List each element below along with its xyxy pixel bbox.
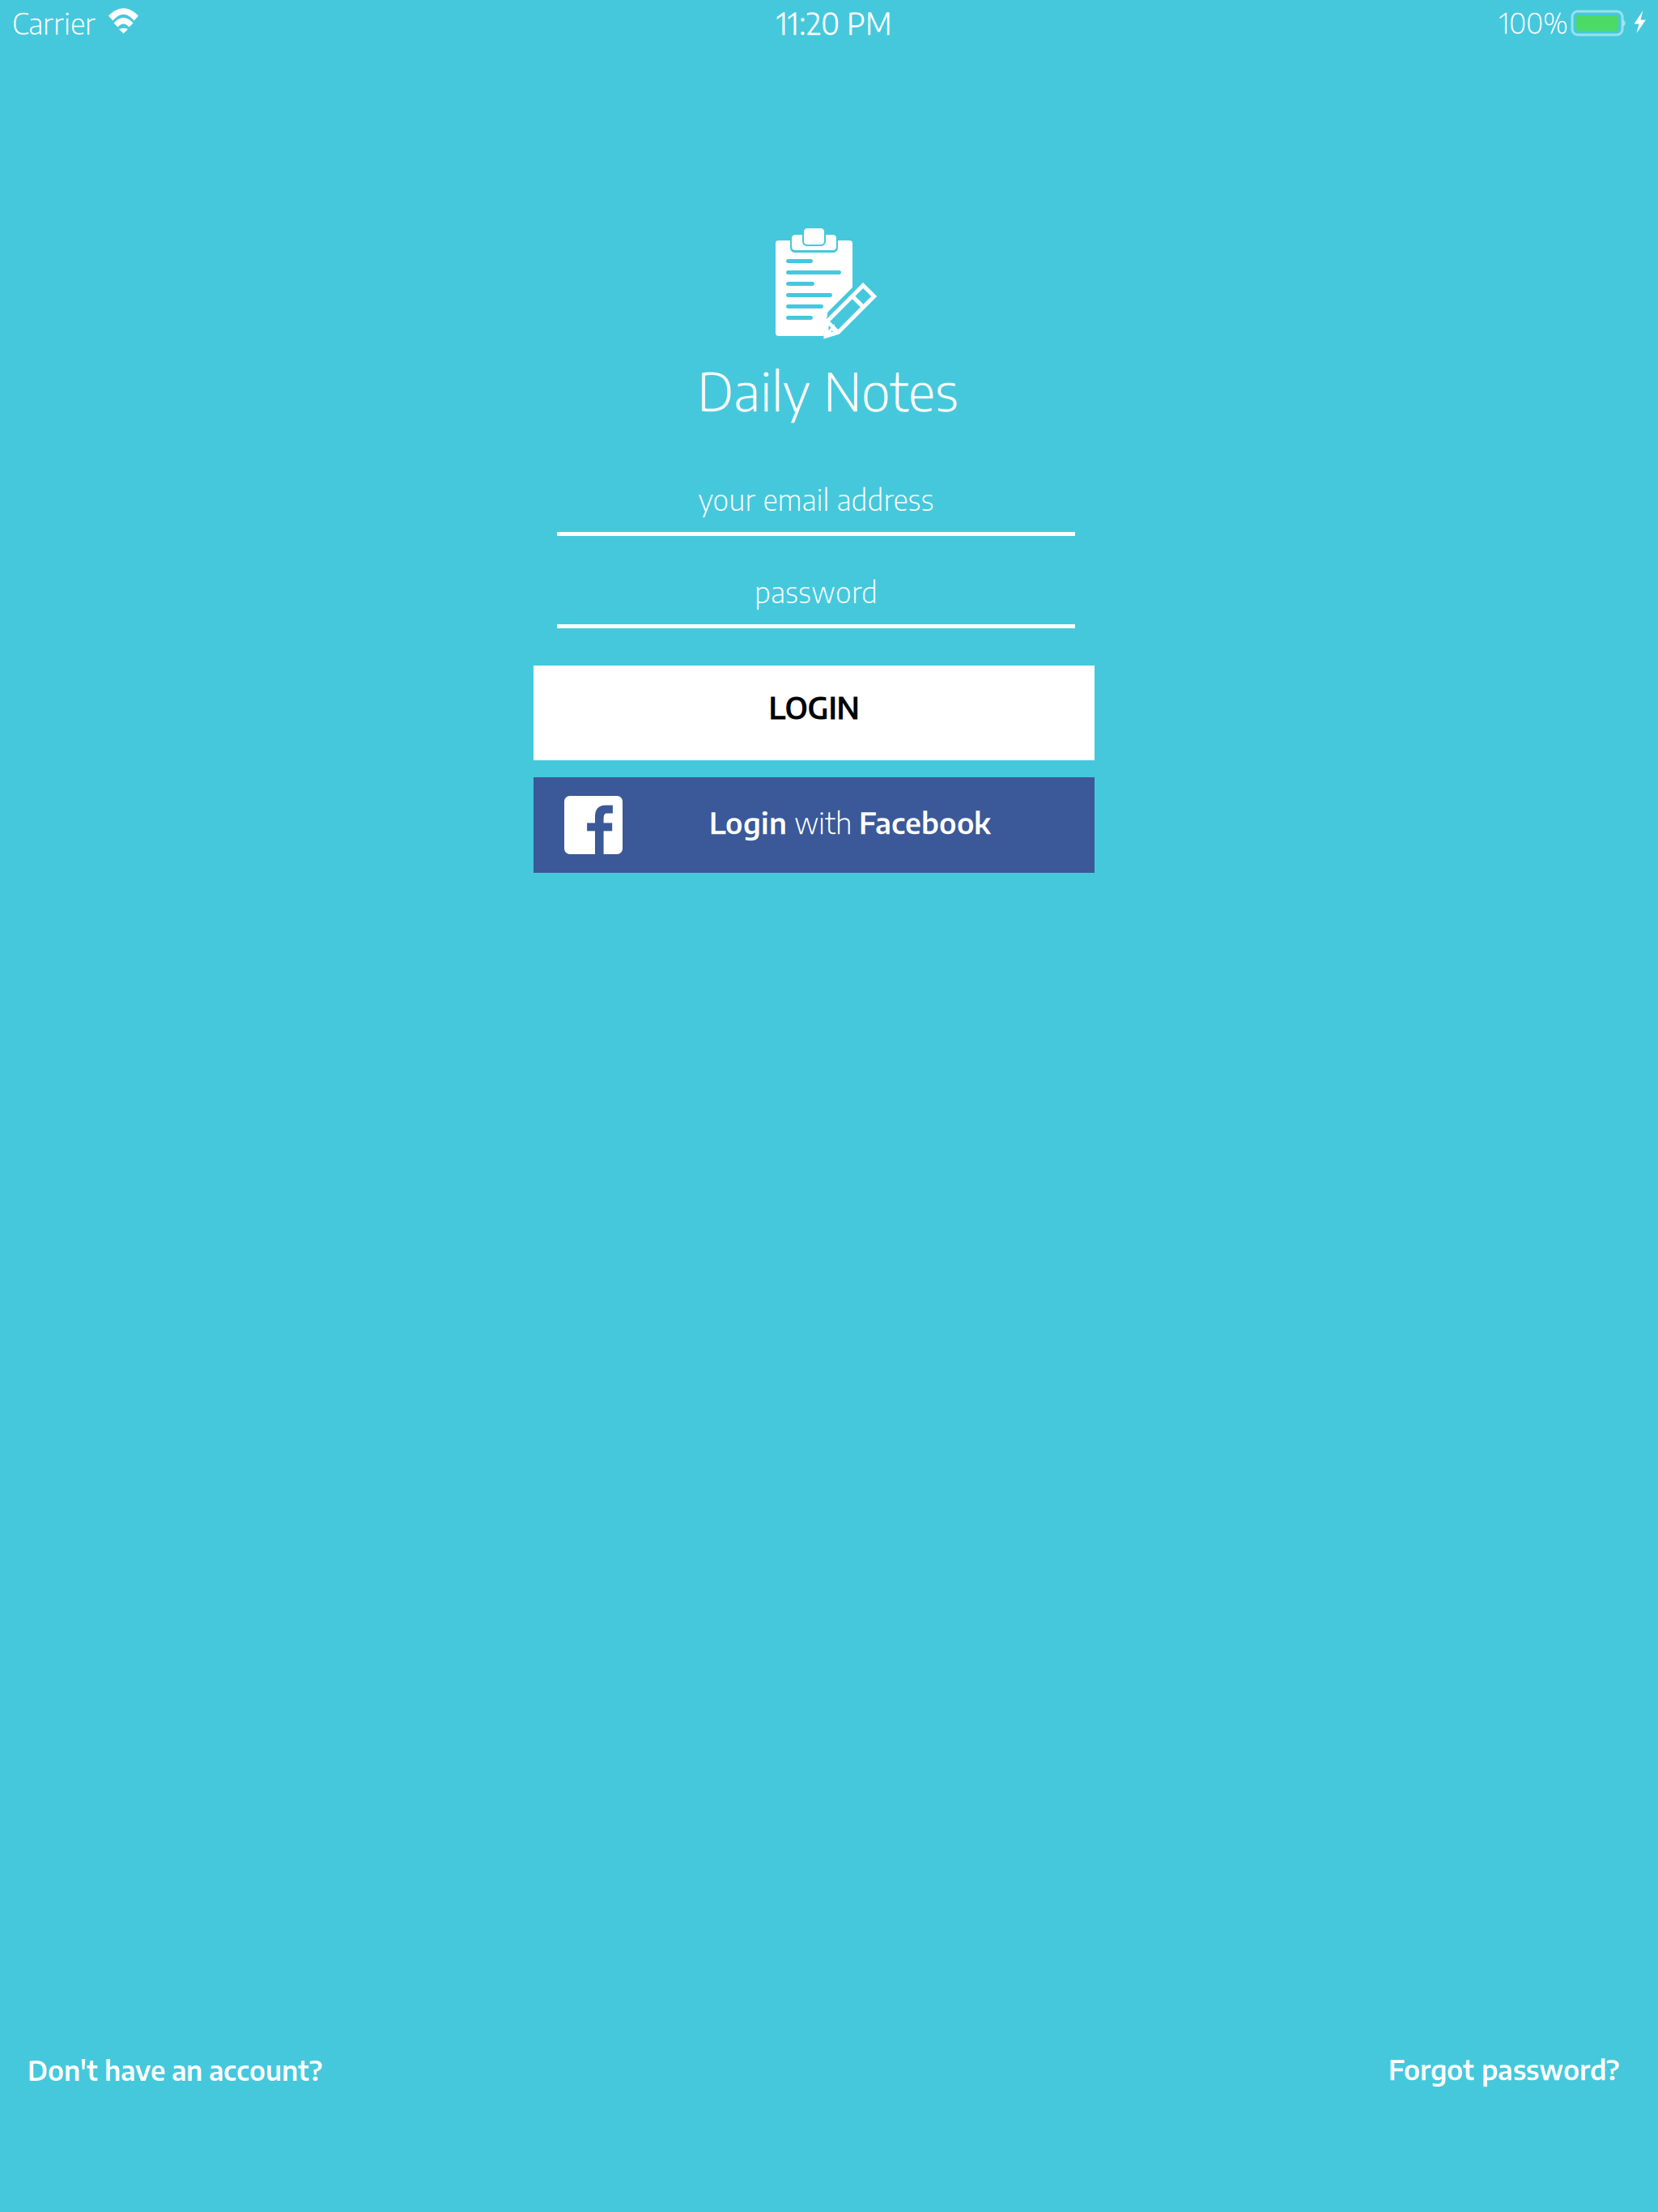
button[interactable]: Login with Facebook (534, 777, 1095, 873)
staticText: Carrier (12, 4, 96, 41)
staticText: password (755, 573, 878, 610)
button[interactable]: Email address field (557, 481, 1075, 536)
button[interactable]: Password field (557, 573, 1075, 628)
staticText: your email address (698, 481, 934, 517)
staticText: 11:20 PM (776, 4, 892, 42)
button[interactable]: Don't have an account? (28, 2052, 322, 2087)
staticText: LOGIN (769, 688, 859, 726)
staticText: Forgot password? (1388, 2052, 1619, 2086)
staticText: Don't have an account? (28, 2052, 322, 2087)
staticText: Login with Facebook (709, 804, 991, 840)
button[interactable]: LOGIN (534, 666, 1095, 760)
staticText: Daily Notes (697, 357, 959, 423)
staticText: 100% (1499, 5, 1568, 40)
button[interactable]: Forgot password? (1388, 2052, 1619, 2086)
